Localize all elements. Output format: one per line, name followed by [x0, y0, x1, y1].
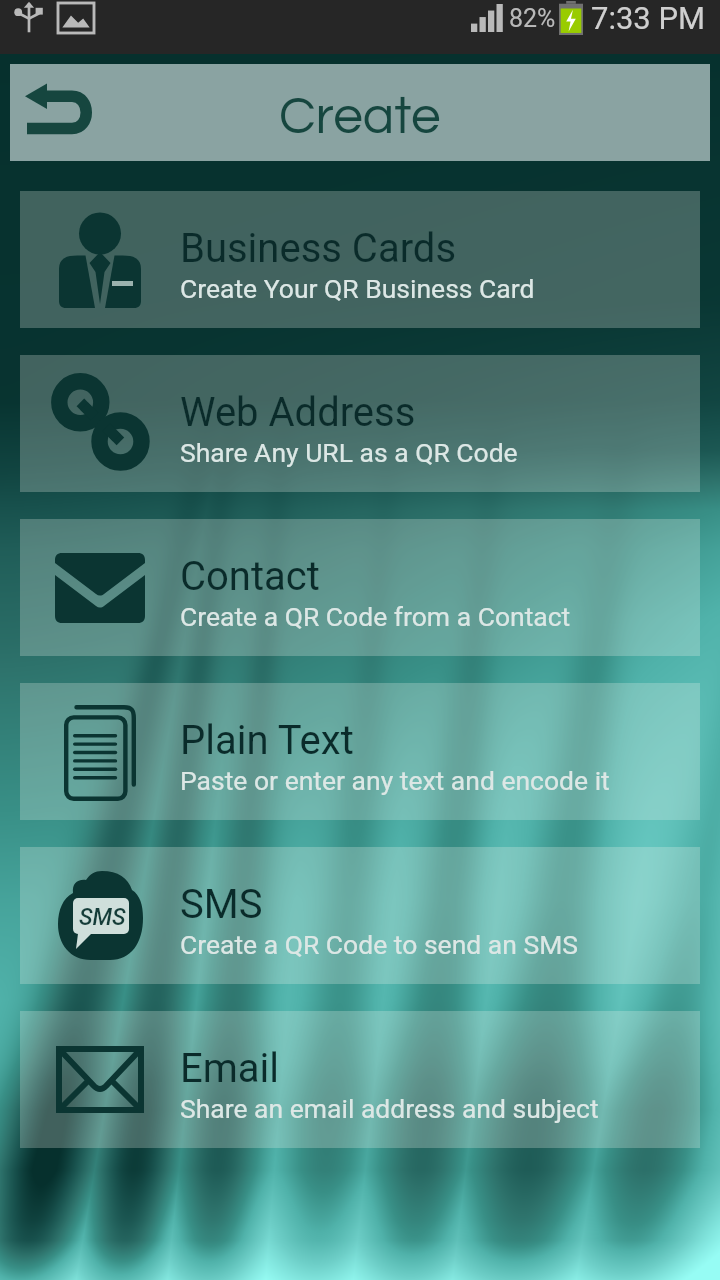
staticText: Create a QR Code to send an SMS: [180, 929, 579, 960]
staticText: Paste or enter any text and encode it: [180, 765, 610, 796]
button[interactable]: Business Cards: [20, 191, 700, 328]
staticText: Business Cards: [180, 225, 457, 272]
staticText: 82%: [509, 4, 556, 33]
button[interactable]: Web Address: [20, 355, 700, 492]
button[interactable]: Plain Text: [20, 683, 700, 820]
staticText: SMS: [180, 881, 263, 928]
button[interactable]: Email: [20, 1011, 700, 1148]
staticText: Share an email address and subject: [180, 1093, 599, 1124]
staticText: Create Your QR Business Card: [180, 273, 535, 304]
staticText: Web Address: [180, 389, 416, 436]
button[interactable]: Contact: [20, 519, 700, 656]
staticText: Contact: [180, 553, 320, 600]
button[interactable]: SMS: [20, 847, 700, 984]
staticText: Email: [180, 1045, 280, 1092]
staticText: Create a QR Code from a Contact: [180, 601, 571, 632]
staticText: Create: [279, 90, 441, 145]
button[interactable]: Back: [10, 64, 118, 161]
staticText: Plain Text: [180, 717, 354, 764]
staticText: Share Any URL as a QR Code: [180, 437, 518, 468]
staticText: SMS: [79, 904, 126, 931]
staticText: 7:33 PM: [591, 0, 706, 36]
